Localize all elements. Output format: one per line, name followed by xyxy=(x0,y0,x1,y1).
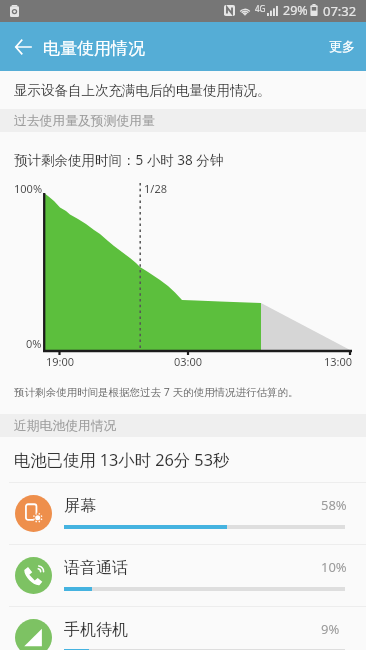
staticText: 电量使用情况 xyxy=(43,38,145,59)
staticText: 4G xyxy=(255,3,266,14)
staticText: 29% xyxy=(283,2,308,19)
staticText: 屏幕 xyxy=(64,496,96,516)
button[interactable]: 手机待机 xyxy=(0,606,366,650)
staticText: 9% xyxy=(321,620,340,638)
button[interactable]: Back xyxy=(7,31,38,62)
staticText: 10% xyxy=(321,558,347,576)
staticText: 预计剩余使用时间：5 小时 38 分钟 xyxy=(14,151,224,169)
staticText: 手机待机 xyxy=(64,620,128,640)
staticText: 更多 xyxy=(329,38,355,54)
button[interactable]: 语音通话 xyxy=(0,544,366,606)
staticText: 1/28 xyxy=(144,181,167,196)
staticText: 预计剩余使用时间是根据您过去 7 天的使用情况进行估算的。 xyxy=(14,385,299,399)
staticText: 电池已使用 13小时 26分 53秒 xyxy=(14,449,230,471)
button[interactable]: 屏幕 xyxy=(0,482,366,544)
staticText: 近期电池使用情况 xyxy=(14,418,117,434)
staticText: 显示设备自上次充满电后的电量使用情况。 xyxy=(14,82,271,99)
staticText: 03:00 xyxy=(174,354,203,369)
staticText: 07:32 xyxy=(323,2,357,20)
staticText: 语音通话 xyxy=(64,558,128,578)
staticText: 过去使用量及预测使用量 xyxy=(14,113,155,129)
staticText: 13:00 xyxy=(324,354,353,369)
staticText: 58% xyxy=(321,496,347,514)
staticText: 100% xyxy=(14,181,43,196)
staticText: 19:00 xyxy=(46,354,75,369)
staticText: 0% xyxy=(26,336,42,351)
